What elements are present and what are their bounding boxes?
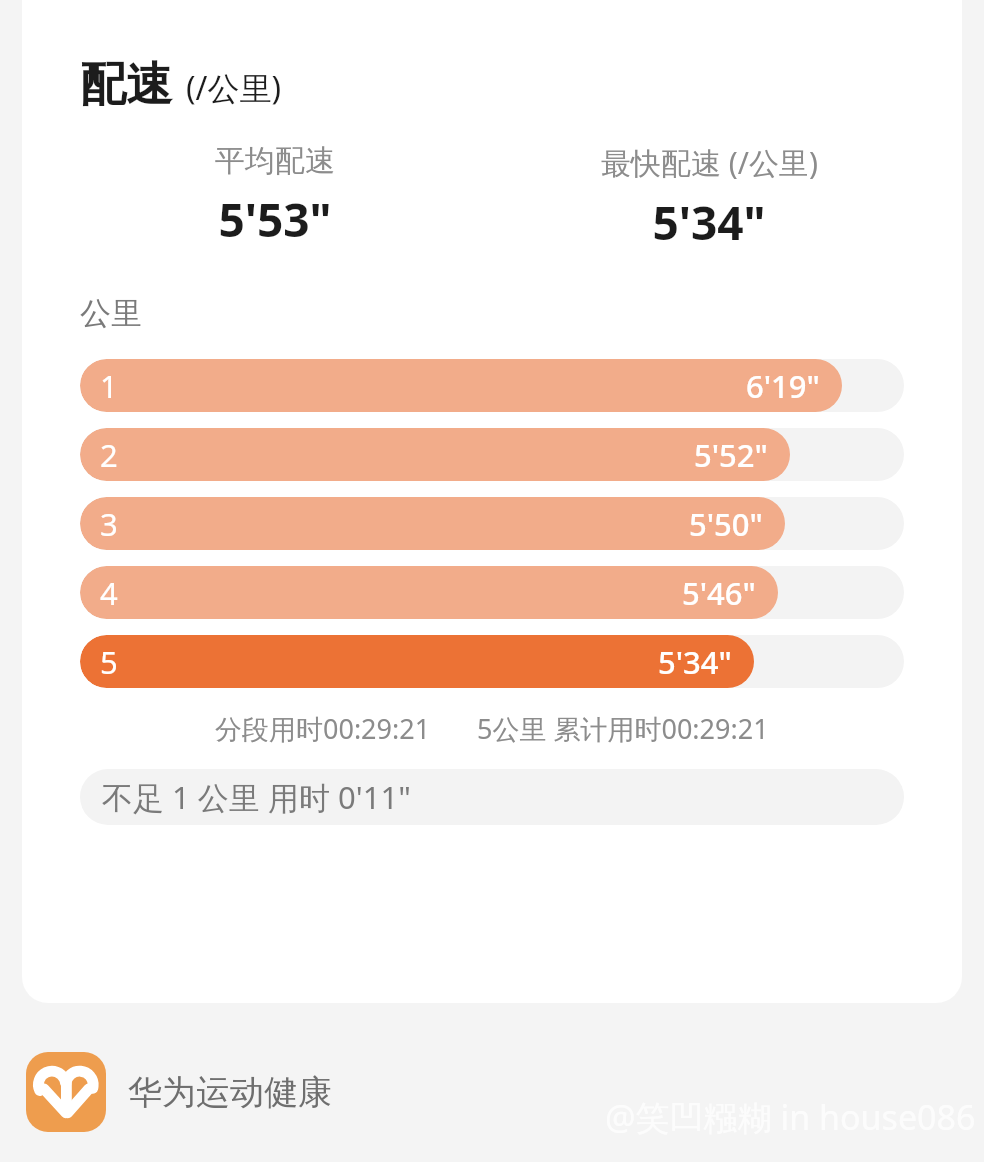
button[interactable]: 1 bbox=[80, 359, 904, 412]
staticText: @笑凹糨糊 in house086 bbox=[605, 1094, 976, 1140]
other: 华为运动健康 bbox=[26, 1052, 106, 1132]
staticText: 5公里 累计用时00:29:21 bbox=[477, 710, 769, 747]
staticText: 3 bbox=[100, 503, 118, 545]
button[interactable]: 2 bbox=[80, 428, 904, 481]
staticText: 2 bbox=[100, 434, 118, 476]
staticText: 华为运动健康 bbox=[128, 1071, 332, 1114]
button[interactable]: 最快配速 (/公里) bbox=[492, 142, 926, 254]
staticText: 4 bbox=[100, 572, 118, 614]
staticText: 5'50" bbox=[689, 503, 763, 545]
staticText: 6'19" bbox=[746, 365, 820, 407]
staticText: 5'34" bbox=[658, 641, 732, 683]
staticText: 5'53" bbox=[218, 188, 332, 251]
staticText: 分段用时00:29:21 bbox=[215, 710, 431, 747]
button[interactable]: 5 bbox=[80, 635, 904, 688]
button[interactable]: 3 bbox=[80, 497, 904, 550]
staticText: 公里 bbox=[80, 294, 142, 333]
staticText: 5'34" bbox=[652, 191, 766, 254]
button[interactable]: 不足 1 公里 用时 0'11" bbox=[80, 769, 904, 825]
staticText: (/公里) bbox=[186, 66, 282, 110]
button[interactable]: 4 bbox=[80, 566, 904, 619]
staticText: 5'46" bbox=[682, 572, 756, 614]
staticText: 配速 bbox=[80, 56, 172, 114]
staticText: 1 bbox=[100, 365, 118, 407]
staticText: 不足 1 公里 用时 0'11" bbox=[102, 776, 411, 818]
staticText: 5 bbox=[100, 641, 118, 683]
staticText: 5'52" bbox=[694, 434, 768, 476]
staticText: 最快配速 (/公里) bbox=[601, 142, 818, 183]
button[interactable]: 华为运动健康 bbox=[26, 1052, 332, 1132]
button[interactable]: 平均配速 bbox=[58, 142, 492, 251]
staticText: 平均配速 bbox=[215, 142, 335, 180]
